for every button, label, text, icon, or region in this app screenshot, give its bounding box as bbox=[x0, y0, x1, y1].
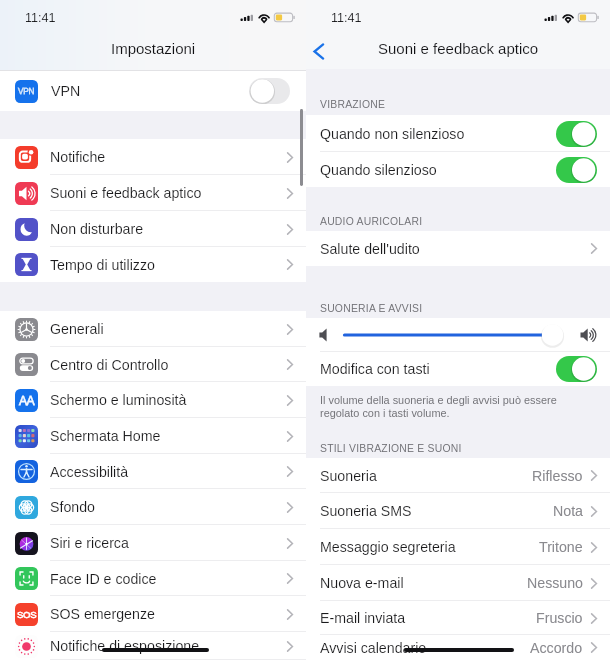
staticText: Centro di Controllo bbox=[50, 357, 285, 373]
button[interactable]: On bbox=[556, 121, 597, 147]
button[interactable]: Suoni e feedback aptico bbox=[0, 175, 306, 211]
staticText: Schermo e luminosità bbox=[50, 392, 285, 408]
button[interactable]: Suoneria bbox=[306, 458, 610, 493]
button[interactable]: Messaggio segreteria bbox=[306, 529, 610, 565]
button[interactable]: Tempo di utilizzo bbox=[0, 247, 306, 282]
button[interactable]: E-mail inviata bbox=[306, 601, 610, 635]
staticText: Impostazioni bbox=[111, 40, 196, 57]
button[interactable]: On bbox=[556, 356, 597, 382]
staticText: Salute dell'udito bbox=[320, 241, 589, 257]
button[interactable]: Off bbox=[249, 78, 290, 104]
staticText: Generali bbox=[50, 321, 285, 337]
staticText: AA bbox=[19, 394, 35, 408]
button[interactable]: VPN bbox=[0, 71, 306, 111]
staticText: Notifiche bbox=[50, 149, 285, 165]
button[interactable]: Back bbox=[310, 43, 328, 60]
staticText: Schermata Home bbox=[50, 428, 285, 444]
staticText: SOS emergenze bbox=[50, 606, 285, 622]
button[interactable]: Quando non silenzioso bbox=[306, 115, 610, 152]
button[interactable]: Generali bbox=[0, 311, 306, 347]
button[interactable]: Salute dell'udito bbox=[306, 231, 610, 266]
button[interactable]: Siri e ricerca bbox=[0, 525, 306, 561]
staticText: VPN bbox=[51, 83, 249, 99]
staticText: Suoneria SMS bbox=[320, 503, 553, 519]
button[interactable]: SOS bbox=[0, 596, 306, 632]
staticText: VIBRAZIONE bbox=[320, 99, 386, 111]
button[interactable]: Notifiche bbox=[0, 139, 306, 175]
staticText: Nessuno bbox=[527, 575, 583, 591]
staticText: Suoni e feedback aptico bbox=[50, 185, 285, 201]
staticText: Suoneria bbox=[320, 468, 532, 484]
staticText: Quando silenzioso bbox=[320, 162, 556, 178]
staticText: Nota bbox=[553, 503, 583, 519]
staticText: STILI VIBRAZIONE E SUONI bbox=[320, 443, 462, 455]
button[interactable]: Non disturbare bbox=[0, 211, 306, 247]
staticText: Avvisi calendario bbox=[320, 640, 530, 656]
staticText: Tritone bbox=[539, 539, 583, 555]
button[interactable]: AA bbox=[0, 382, 306, 418]
staticText: Quando non silenzioso bbox=[320, 126, 556, 142]
staticText: Notifiche di esposizione bbox=[50, 638, 285, 654]
staticText: Non disturbare bbox=[50, 221, 285, 237]
staticText: SUONERIA E AVVISI bbox=[320, 303, 423, 315]
button[interactable]: Quando silenzioso bbox=[306, 152, 610, 187]
button[interactable]: Face ID e codice bbox=[0, 561, 306, 596]
staticText: Suoni e feedback aptico bbox=[378, 40, 539, 57]
button[interactable]: Schermata Home bbox=[0, 418, 306, 454]
staticText: Fruscio bbox=[536, 610, 583, 626]
staticText: E-mail inviata bbox=[320, 610, 536, 626]
staticText: 11:41 bbox=[331, 11, 362, 25]
staticText: Tempo di utilizzo bbox=[50, 257, 285, 273]
button[interactable]: Avvisi calendario bbox=[306, 635, 610, 660]
staticText: Sfondo bbox=[50, 499, 285, 515]
button[interactable]: Notifiche di esposizione bbox=[0, 632, 306, 660]
staticText: regolato con i tasti volume. bbox=[320, 407, 450, 419]
button[interactable]: Modifica con tasti bbox=[306, 352, 610, 386]
staticText: 11:41 bbox=[25, 11, 56, 25]
staticText: Modifica con tasti bbox=[320, 361, 556, 377]
button[interactable]: On bbox=[556, 157, 597, 183]
staticText: Nuova e-mail bbox=[320, 575, 527, 591]
staticText: Face ID e codice bbox=[50, 571, 285, 587]
button[interactable]: Centro di Controllo bbox=[0, 347, 306, 382]
staticText: Accessibilità bbox=[50, 464, 285, 480]
button[interactable]: Suoneria SMS bbox=[306, 493, 610, 529]
button[interactable]: Nuova e-mail bbox=[306, 565, 610, 601]
staticText: AUDIO AURICOLARI bbox=[320, 216, 423, 228]
staticText: Accordo bbox=[530, 640, 583, 656]
staticText: Siri e ricerca bbox=[50, 535, 285, 551]
staticText: Il volume della suoneria e degli avvisi … bbox=[320, 394, 557, 406]
staticText: SOS bbox=[17, 609, 37, 620]
staticText: VPN bbox=[18, 87, 35, 96]
button[interactable]: Sfondo bbox=[0, 489, 306, 525]
staticText: Riflesso bbox=[532, 468, 583, 484]
staticText: Messaggio segreteria bbox=[320, 539, 539, 555]
button[interactable]: Accessibilità bbox=[0, 454, 306, 489]
